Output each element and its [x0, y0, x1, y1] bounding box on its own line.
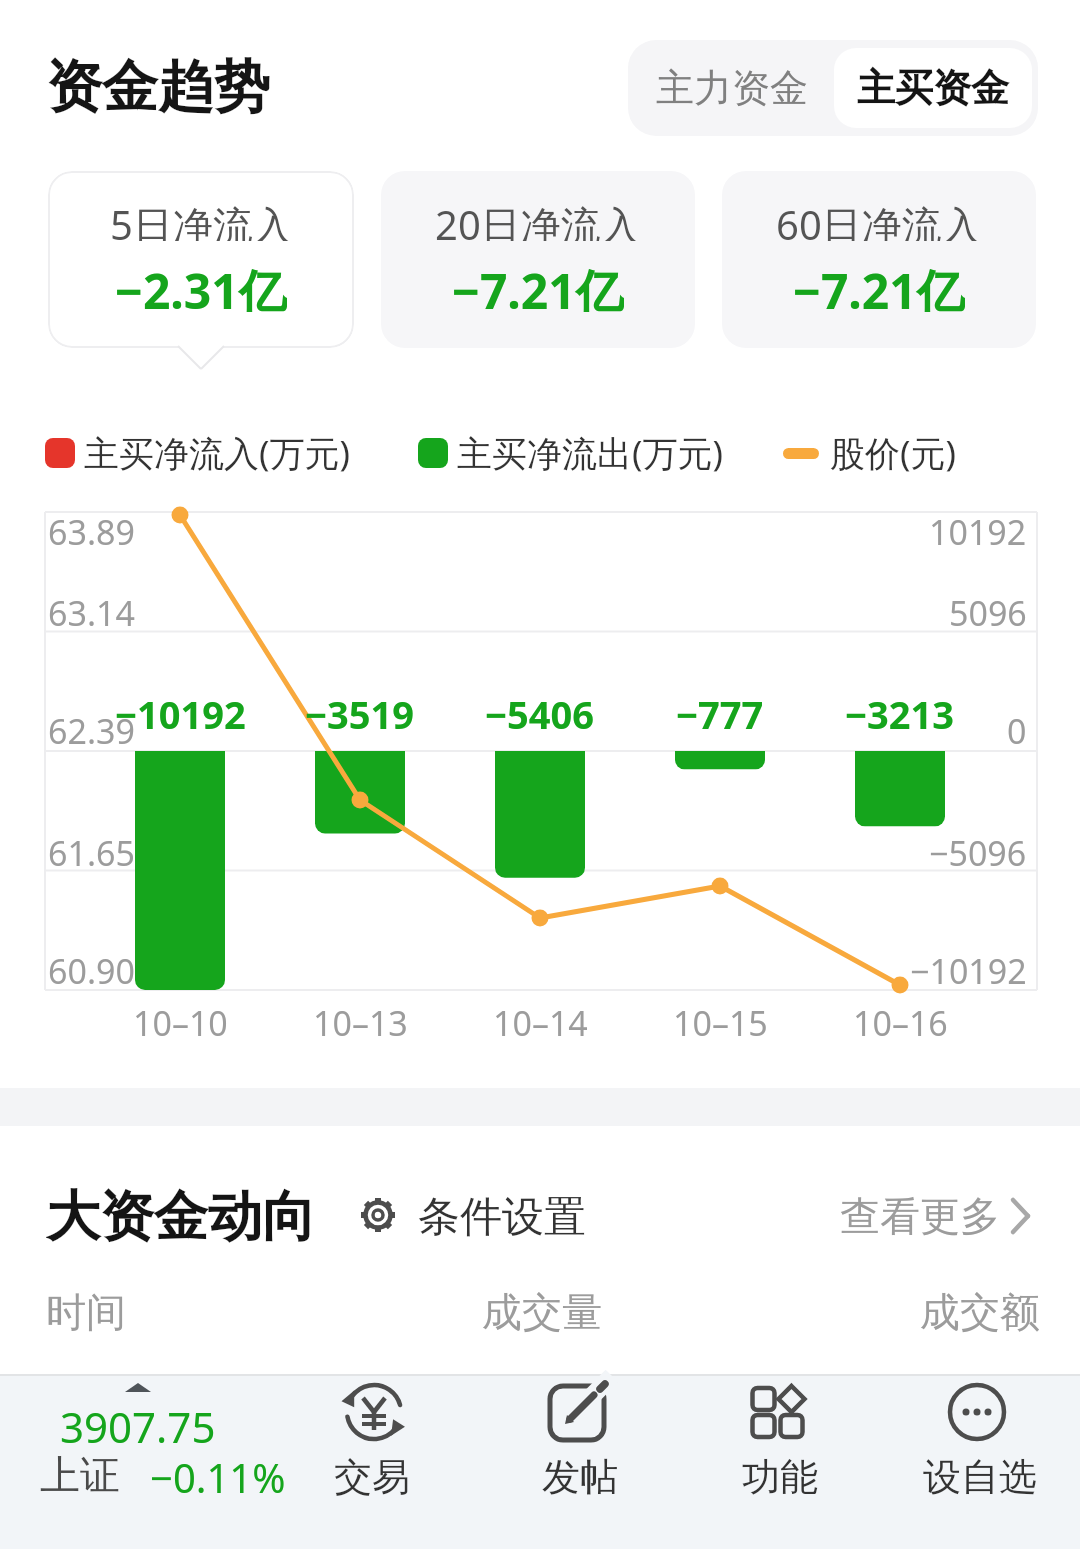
staticText: 63.89 [48, 509, 135, 555]
button[interactable] [898, 1378, 1062, 1549]
button[interactable] [722, 171, 1036, 348]
staticText: 股价(元) [830, 429, 957, 477]
button[interactable] [292, 1378, 452, 1549]
staticText: −3519 [305, 688, 415, 736]
staticText: 大资金动向 [46, 1183, 316, 1247]
staticText: 10–10 [133, 1000, 228, 1046]
staticText: 设自选 [923, 1453, 1037, 1497]
staticText: 主力资金 [656, 64, 808, 112]
staticText: −7.21亿 [452, 258, 624, 312]
button[interactable] [500, 1378, 660, 1549]
staticText: 3907.75 [60, 1398, 216, 1446]
staticText: −3213 [845, 688, 955, 736]
staticText: 交易 [334, 1453, 410, 1497]
staticText: 发帖 [542, 1453, 618, 1497]
staticText: −777 [676, 688, 764, 736]
button[interactable] [48, 171, 354, 348]
button[interactable] [381, 171, 695, 348]
staticText: −10192 [910, 948, 1027, 994]
staticText: 主买净流入(万元) [84, 429, 351, 477]
staticText: −0.11% [150, 1450, 286, 1494]
staticText: 主买资金 [857, 64, 1009, 112]
staticText: 时间 [46, 1287, 126, 1335]
staticText: −7.21亿 [793, 258, 965, 312]
button[interactable] [700, 1378, 860, 1549]
staticText: 成交量 [482, 1287, 602, 1335]
staticText: 5096 [949, 590, 1027, 636]
staticText: −5406 [485, 688, 595, 736]
staticText: 成交额 [920, 1287, 1040, 1335]
staticText: 10–14 [493, 1000, 588, 1046]
staticText: 资金趋势 [46, 52, 270, 122]
staticText: 63.14 [48, 590, 135, 636]
button[interactable] [834, 48, 1032, 128]
staticText: −5096 [929, 830, 1027, 876]
staticText: 5日净流入 [110, 197, 293, 241]
staticText: 功能 [742, 1453, 818, 1497]
staticText: 62.39 [48, 708, 135, 754]
staticText: 0 [1007, 708, 1027, 754]
staticText: 10–15 [673, 1000, 768, 1046]
staticText: 条件设置 [418, 1191, 586, 1239]
staticText: 查看更多 [840, 1191, 1000, 1239]
button[interactable]: 条件设置 [418, 1191, 718, 1239]
staticText: 60日净流入 [776, 197, 982, 241]
staticText: 10192 [929, 509, 1027, 555]
staticText: 上证 [40, 1450, 120, 1494]
staticText: −10192 [115, 688, 246, 736]
staticText: 主买净流出(万元) [457, 429, 724, 477]
button[interactable]: 查看更多 [800, 1191, 1000, 1239]
staticText: 61.65 [48, 830, 135, 876]
staticText: −2.31亿 [115, 258, 287, 312]
staticText: 60.90 [48, 948, 135, 994]
staticText: 20日净流入 [435, 197, 641, 241]
button[interactable] [20, 1378, 270, 1549]
staticText: 10–16 [853, 1000, 948, 1046]
button[interactable]: 主力资金 [628, 40, 836, 136]
staticText: 10–13 [313, 1000, 408, 1046]
